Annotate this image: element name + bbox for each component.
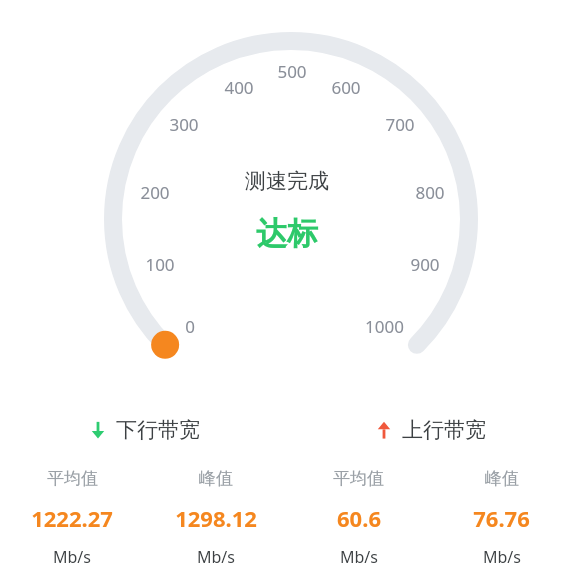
staticText: 800 (415, 181, 445, 204)
other: Download (87, 419, 109, 441)
button[interactable]: Download (0, 417, 286, 443)
other: Upload (373, 419, 395, 441)
staticText: 上行带宽 (402, 417, 486, 443)
staticText: Mb/s (483, 546, 521, 568)
staticText: 200 (140, 181, 170, 204)
staticText: 300 (169, 113, 199, 136)
staticText: 900 (410, 253, 440, 276)
staticText: Mb/s (197, 546, 235, 568)
button[interactable]: 峰值 (430, 460, 573, 568)
staticText: 平均值 (47, 468, 98, 489)
staticText: 测速完成 (245, 168, 329, 194)
button[interactable]: 峰值 (144, 460, 287, 568)
staticText: 峰值 (485, 468, 519, 489)
staticText: 76.76 (473, 503, 530, 533)
staticText: 下行带宽 (116, 417, 200, 443)
button[interactable]: 平均值 (287, 460, 430, 568)
staticText: 0 (185, 315, 195, 338)
staticText: 达标 (256, 214, 318, 253)
staticText: 1298.12 (175, 503, 257, 533)
button[interactable]: Upload (286, 417, 573, 443)
staticText: 峰值 (199, 468, 233, 489)
staticText: 100 (145, 253, 175, 276)
staticText: 600 (331, 76, 361, 99)
staticText: 400 (224, 76, 254, 99)
staticText: 700 (385, 113, 415, 136)
staticText: 500 (277, 60, 307, 83)
staticText: 1222.27 (31, 503, 113, 533)
staticText: 60.6 (337, 503, 381, 533)
staticText: 1000 (365, 315, 404, 338)
button[interactable]: 平均值 (0, 460, 144, 568)
staticText: Mb/s (340, 546, 378, 568)
staticText: 平均值 (333, 468, 384, 489)
staticText: Mb/s (53, 546, 91, 568)
